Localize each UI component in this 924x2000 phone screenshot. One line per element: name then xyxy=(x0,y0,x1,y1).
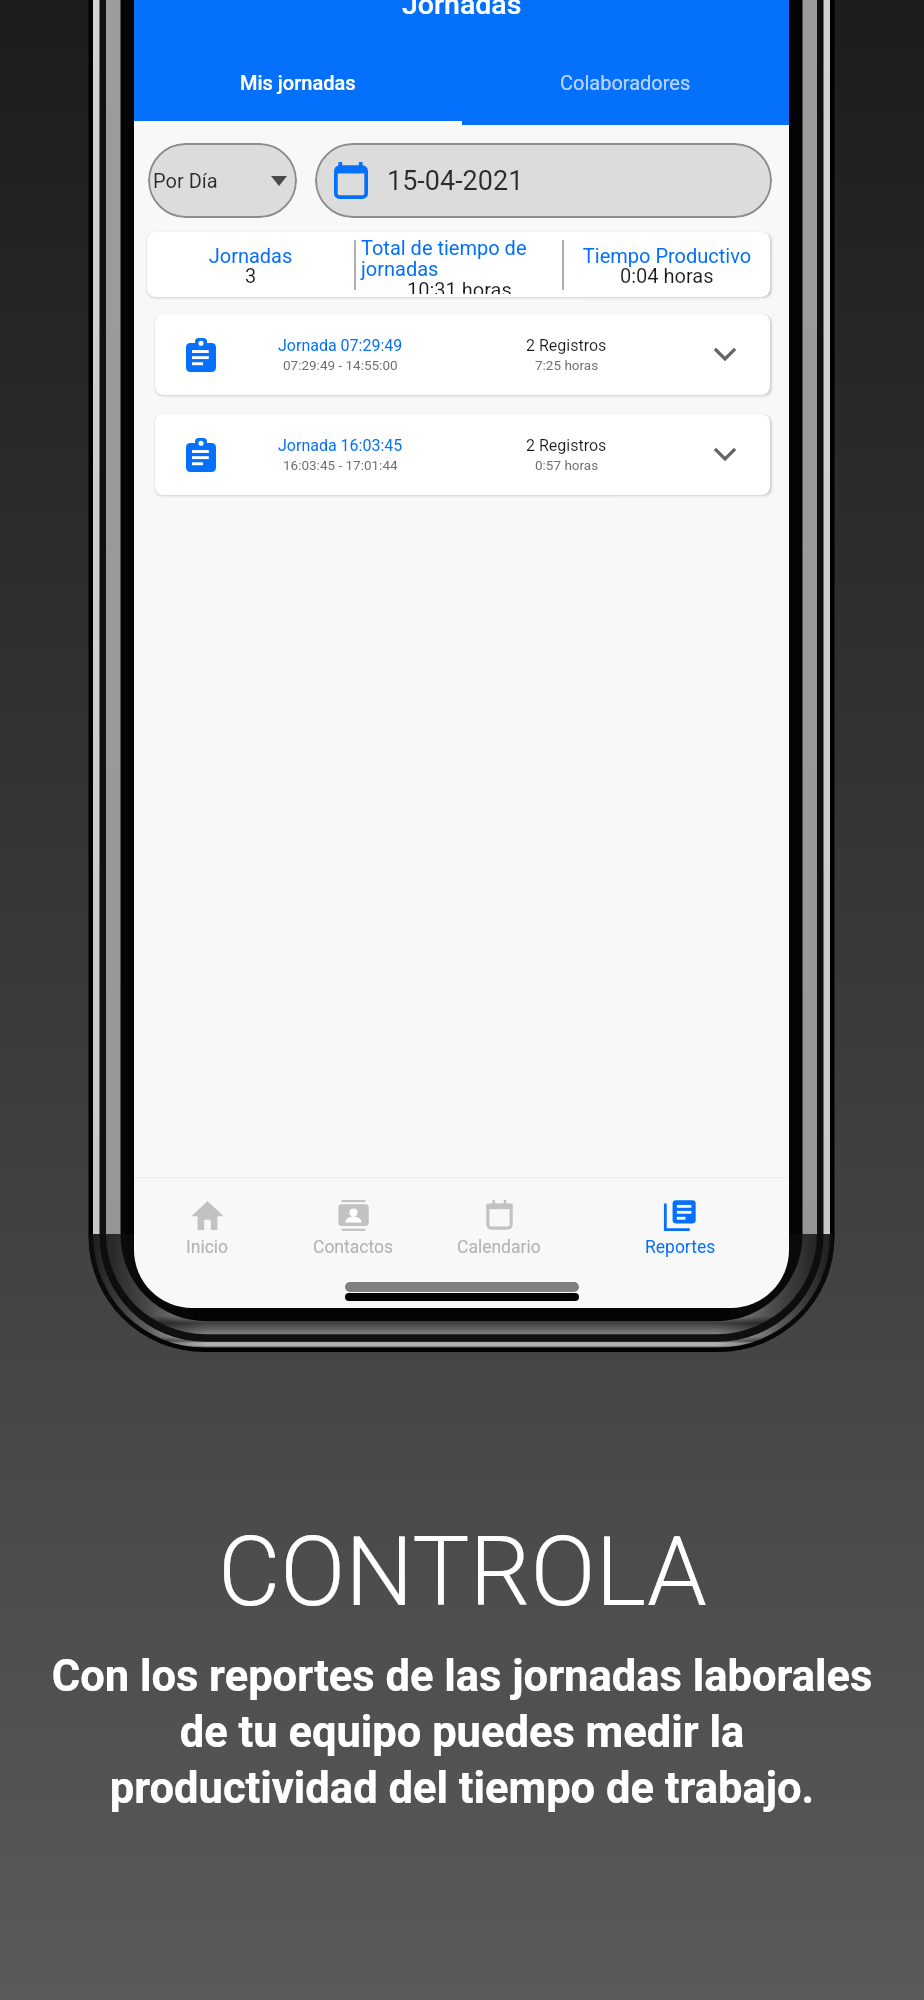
button[interactable]: Mis jornadas xyxy=(134,59,461,125)
staticText: 16:03:45 - 17:01:44 xyxy=(283,457,398,473)
staticText: Colaboradores xyxy=(560,71,691,94)
staticText: Reportes xyxy=(645,1237,716,1258)
staticText: 0:04 horas xyxy=(620,264,714,287)
staticText: Con los reportes de las jornadas laboral… xyxy=(47,1651,877,1814)
staticText: 07:29:49 - 14:55:00 xyxy=(283,357,398,373)
staticText: 0:57 horas xyxy=(535,457,599,473)
staticText: 7:25 horas xyxy=(535,357,599,373)
button[interactable]: Reportes xyxy=(572,1178,789,1279)
button[interactable]: Inicio xyxy=(134,1178,280,1279)
button[interactable]: 15-04-2021 xyxy=(315,143,772,218)
button[interactable]: Expandir jornada xyxy=(668,314,770,395)
staticText: Jornada 16:03:45 xyxy=(278,436,403,455)
button[interactable]: Calendario xyxy=(426,1178,572,1279)
staticText: 2 Registros xyxy=(526,436,607,455)
button[interactable]: Jornada 16:03:45 xyxy=(155,414,770,495)
staticText: Inicio xyxy=(186,1237,229,1258)
staticText: Jornadas xyxy=(402,0,522,21)
staticText: 3 xyxy=(245,264,257,287)
staticText: 10:31 horas xyxy=(407,278,512,294)
staticText: Calendario xyxy=(457,1237,541,1258)
button[interactable]: Jornada 07:29:49 xyxy=(155,314,770,395)
button[interactable]: Colaboradores xyxy=(461,59,789,125)
staticText: Tiempo Productivo xyxy=(569,244,765,267)
staticText: Mis jornadas xyxy=(240,71,356,94)
button[interactable]: Por Día xyxy=(148,143,297,218)
staticText: CONTROLA xyxy=(218,1516,707,1629)
staticText: Total de tiempo de jornadas xyxy=(361,236,557,281)
staticText: 15-04-2021 xyxy=(387,165,524,197)
button[interactable]: Expandir jornada xyxy=(668,414,770,495)
button[interactable]: Contactos xyxy=(280,1178,426,1279)
staticText: Por Día xyxy=(153,169,218,192)
staticText: Jornada 07:29:49 xyxy=(278,336,403,355)
staticText: 2 Registros xyxy=(526,336,607,355)
staticText: Jornadas xyxy=(152,244,349,267)
staticText: Contactos xyxy=(313,1237,394,1258)
